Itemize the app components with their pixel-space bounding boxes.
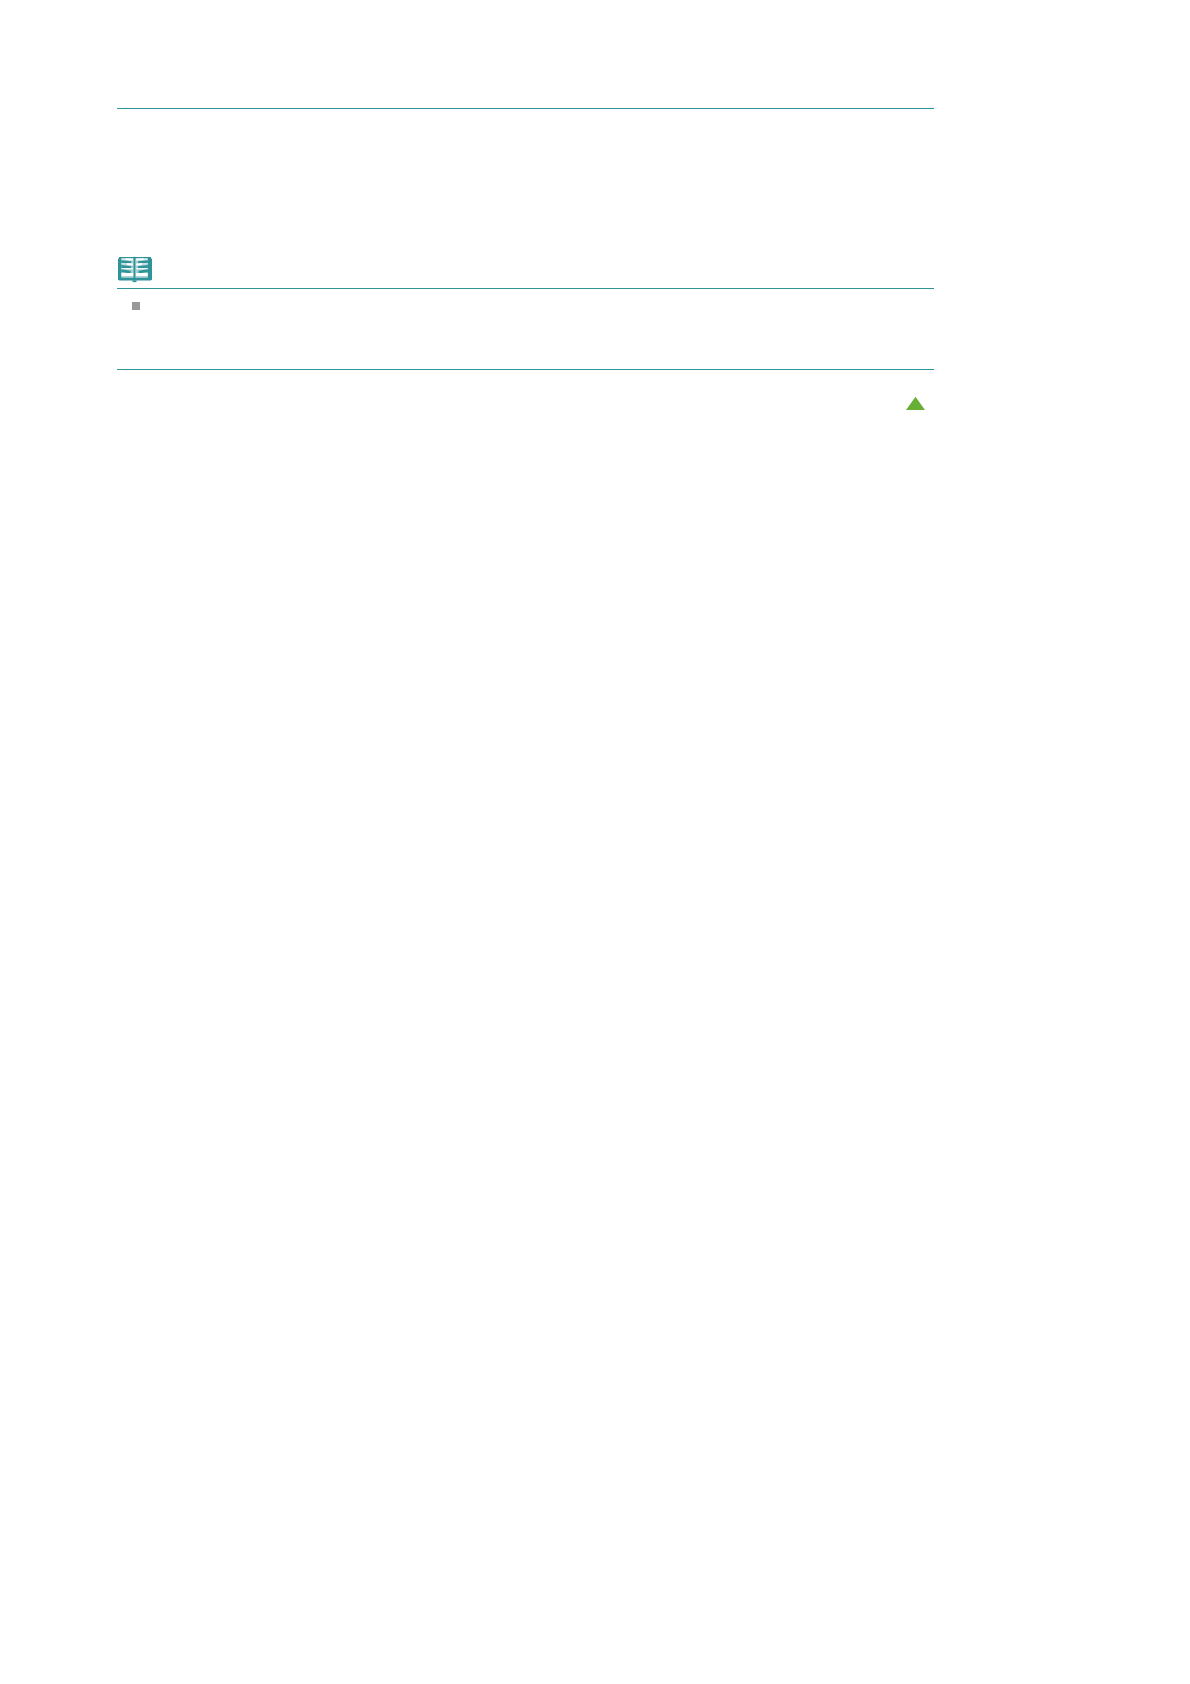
button[interactable]: Back to page top xyxy=(905,396,926,411)
